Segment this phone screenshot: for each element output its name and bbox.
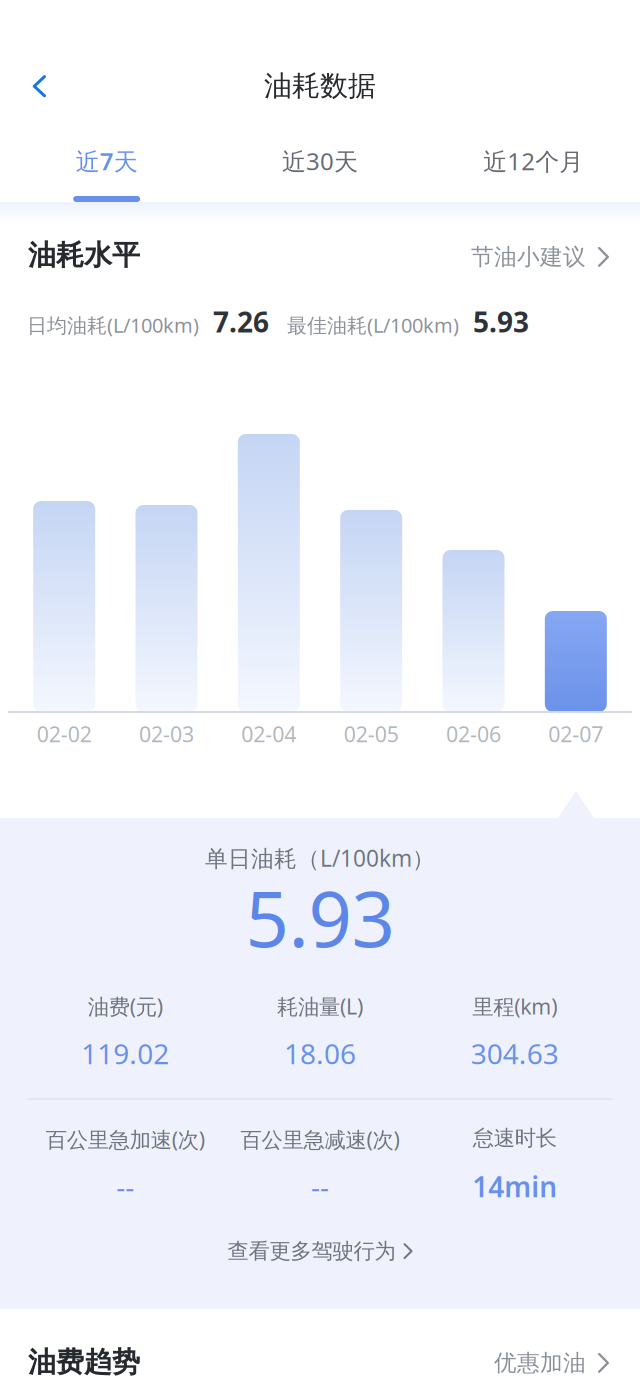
staticText: 百公里急加速(次) xyxy=(46,1125,205,1153)
staticText: 近30天 xyxy=(282,145,358,177)
staticText: 5.93 xyxy=(459,303,529,340)
staticText: 耗油量(L) xyxy=(277,992,363,1020)
staticText: 02-02 xyxy=(37,720,92,748)
staticText: 怠速时长 xyxy=(473,1125,557,1151)
staticText: 油费趋势 xyxy=(28,1345,140,1379)
staticText: 日均油耗(L/100km) xyxy=(27,312,199,338)
staticText: 02-04 xyxy=(241,720,296,748)
staticText: 近7天 xyxy=(76,145,138,177)
staticText: 查看更多驾驶行为 xyxy=(227,1238,395,1264)
button[interactable]: 近12个月 xyxy=(427,138,640,202)
staticText: 油耗水平 xyxy=(28,238,140,272)
button[interactable]: 查看更多驾驶行为 xyxy=(0,1228,640,1274)
button[interactable]: 节油小建议 xyxy=(463,234,617,280)
staticText: 14min xyxy=(472,1168,557,1205)
staticText: 单日油耗（L/100km） xyxy=(205,843,435,873)
button[interactable]: 近7天 xyxy=(0,138,213,202)
button[interactable]: 近30天 xyxy=(213,138,427,202)
staticText: 7.26 xyxy=(199,303,269,340)
staticText: 18.06 xyxy=(284,1035,356,1072)
button[interactable]: 优惠加油 xyxy=(486,1340,617,1386)
staticText: 02-07 xyxy=(548,720,603,748)
button[interactable]: 返回 xyxy=(9,56,69,116)
staticText: 里程(km) xyxy=(472,992,557,1020)
staticText: 02-06 xyxy=(446,720,501,748)
staticText: 油耗数据 xyxy=(264,69,376,103)
staticText: 优惠加油 xyxy=(494,1349,586,1377)
staticText: 油费(元) xyxy=(88,992,163,1020)
staticText: 304.63 xyxy=(471,1035,559,1072)
staticText: 近12个月 xyxy=(483,145,583,177)
staticText: 最佳油耗(L/100km) xyxy=(269,312,459,338)
staticText: -- xyxy=(311,1168,329,1205)
staticText: 02-05 xyxy=(344,720,399,748)
staticText: -- xyxy=(116,1168,134,1205)
staticText: 119.02 xyxy=(81,1035,169,1072)
staticText: 百公里急减速(次) xyxy=(240,1125,399,1153)
staticText: 02-03 xyxy=(139,720,194,748)
staticText: 节油小建议 xyxy=(471,243,586,271)
staticText: 5.93 xyxy=(245,867,394,968)
